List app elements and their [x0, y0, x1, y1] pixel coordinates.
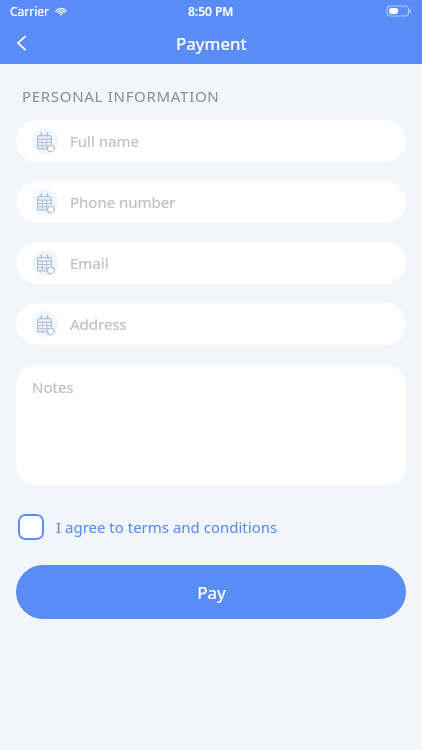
staticText: 8:50 PM	[188, 3, 234, 19]
staticText: Email	[70, 253, 109, 273]
staticText: Pay	[197, 581, 226, 604]
staticText: Full name	[70, 131, 139, 151]
button[interactable]: Notes	[16, 365, 406, 485]
button[interactable]: Full name	[16, 120, 406, 162]
button[interactable]: I agree to terms and conditions	[18, 511, 404, 543]
button[interactable]: Pay	[16, 565, 406, 619]
button[interactable]: Back	[0, 22, 44, 64]
button[interactable]: Address	[16, 303, 406, 345]
staticText: Address	[70, 314, 127, 334]
button[interactable]: Email	[16, 242, 406, 284]
button[interactable]: Phone number	[16, 181, 406, 223]
staticText: Phone number	[70, 192, 176, 212]
staticText: PERSONAL INFORMATION	[22, 86, 220, 106]
staticText: Payment	[176, 32, 247, 55]
staticText: Notes	[32, 377, 74, 397]
staticText: I agree to terms and conditions	[56, 517, 278, 537]
staticText: Carrier	[10, 3, 50, 19]
